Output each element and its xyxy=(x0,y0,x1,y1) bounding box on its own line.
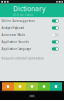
staticText: v3.0 de Carlos xyxy=(13,13,33,17)
staticText: Application Sounds xyxy=(1,40,28,44)
button[interactable]: Application Sounds xyxy=(0,38,64,45)
staticText: Autoresize Mode xyxy=(1,33,25,37)
button[interactable]: Home xyxy=(0,92,64,100)
button[interactable]: Phone xyxy=(14,81,26,92)
button[interactable]: Online Autosuggestion xyxy=(0,17,64,24)
button[interactable]: Autoresize Mode xyxy=(0,31,64,38)
button[interactable]: Analysis Keyboard xyxy=(0,24,64,31)
staticText: Analysis Keyboard xyxy=(1,26,24,30)
button[interactable]: Messages xyxy=(38,81,50,92)
staticText: Requires internet connection xyxy=(1,57,44,60)
button[interactable]: Browser xyxy=(2,81,14,92)
staticText: Application Language xyxy=(1,47,31,51)
button[interactable]: All apps xyxy=(50,81,62,92)
button[interactable]: Contacts xyxy=(26,81,38,92)
button[interactable]: Application Language xyxy=(0,45,64,52)
staticText: Online Autosuggestion xyxy=(1,19,35,23)
staticText: Dictionary xyxy=(13,4,45,13)
